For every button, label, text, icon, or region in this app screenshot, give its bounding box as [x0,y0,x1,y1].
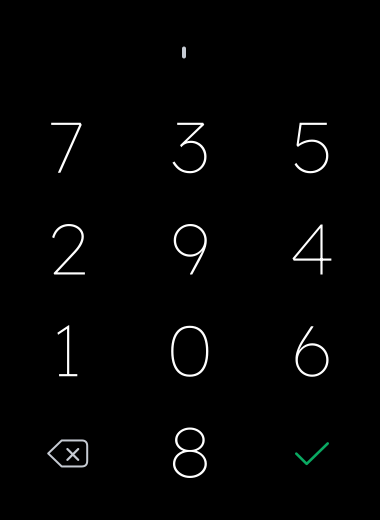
button[interactable]: 9 [129,197,251,298]
button[interactable]: Delete [7,400,129,502]
staticText: 8 [169,406,211,496]
button[interactable]: 0 [129,298,251,400]
staticText: 0 [167,304,212,394]
button[interactable]: 7 [7,95,129,197]
button[interactable]: Confirm [251,400,373,502]
staticText: 6 [291,304,334,394]
staticText: 1 [54,304,82,394]
button[interactable]: 4 [251,197,373,298]
staticText: 7 [51,101,85,191]
staticText: 3 [171,101,209,191]
button[interactable]: 3 [129,95,251,197]
button[interactable]: 6 [251,298,373,400]
button[interactable]: 8 [129,400,251,502]
staticText: 9 [170,202,209,292]
button[interactable]: 1 [7,298,129,400]
button[interactable]: 2 [7,197,129,298]
button[interactable]: 5 [251,95,373,197]
staticText: 4 [290,202,335,292]
staticText: 2 [48,202,87,292]
staticText: 5 [292,101,333,191]
